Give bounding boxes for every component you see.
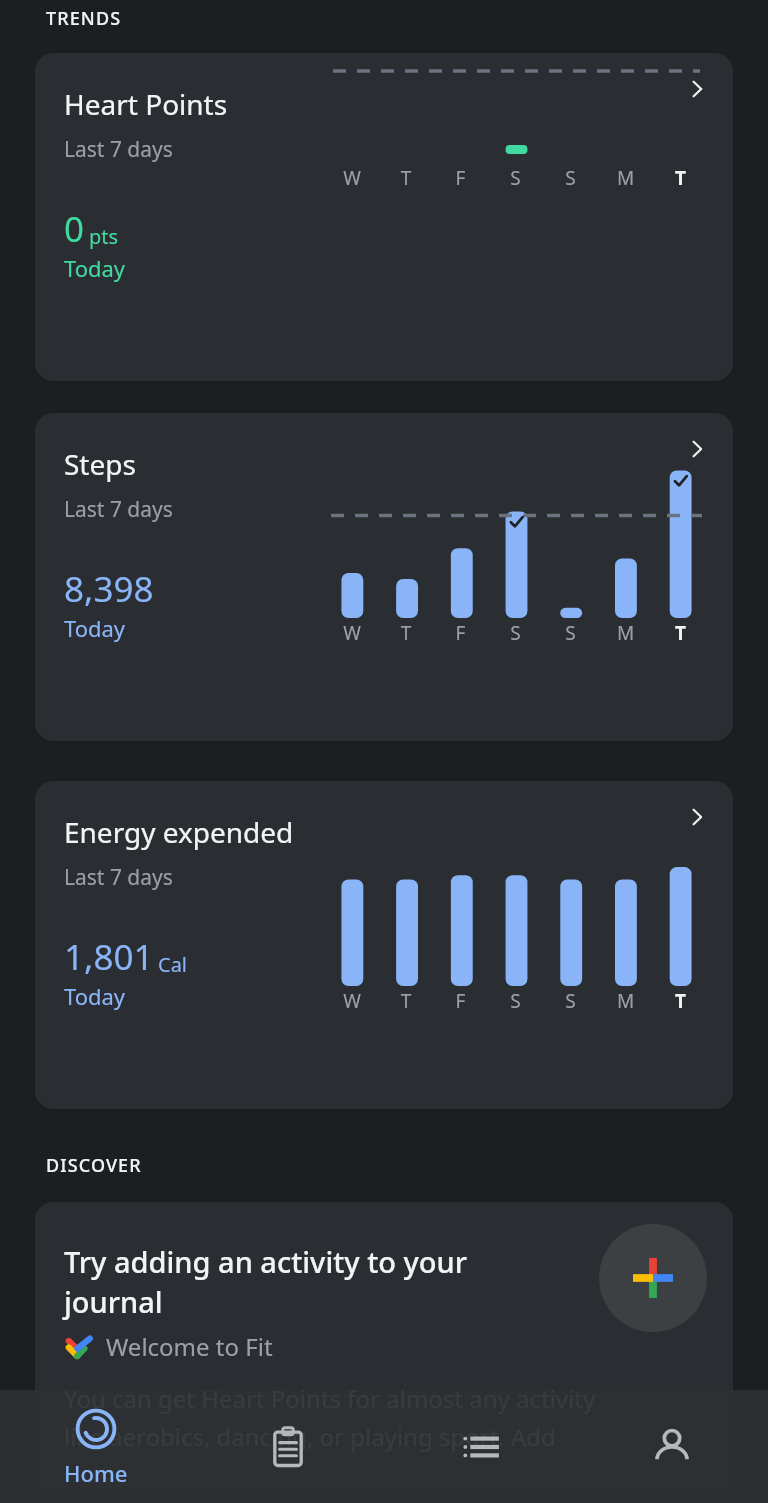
button[interactable]: Energy expended xyxy=(35,781,733,1109)
staticText: Cal xyxy=(158,951,188,978)
staticText: Try adding an activity to your journal xyxy=(64,1242,468,1322)
staticText: 8,398 xyxy=(64,565,154,613)
staticText: T xyxy=(653,165,708,191)
button[interactable]: Open details xyxy=(675,427,719,471)
staticText: T xyxy=(653,620,708,646)
staticText: F xyxy=(433,620,488,646)
staticText: Today xyxy=(64,981,126,1011)
staticText: M xyxy=(598,620,653,646)
staticText: pts xyxy=(89,223,119,250)
staticText: Last 7 days xyxy=(64,863,173,892)
staticText: Last 7 days xyxy=(64,495,173,524)
staticText: W xyxy=(325,165,379,191)
staticText: W xyxy=(325,620,379,646)
staticText: F xyxy=(433,165,488,191)
button[interactable]: Profile xyxy=(576,1390,768,1503)
staticText: Welcome to Fit xyxy=(106,1330,273,1363)
staticText: Steps xyxy=(64,445,136,483)
button[interactable]: Try adding an activity to your journal xyxy=(35,1202,733,1492)
staticText: S xyxy=(488,165,543,191)
staticText: T xyxy=(379,988,433,1014)
staticText: S xyxy=(543,165,598,191)
button[interactable]: Open details xyxy=(675,67,719,111)
staticText: T xyxy=(653,988,708,1014)
button[interactable]: Home xyxy=(0,1390,192,1503)
staticText: Home xyxy=(64,1458,128,1488)
staticText: Heart Points xyxy=(64,85,228,123)
button[interactable]: Open details xyxy=(675,795,719,839)
staticText: You can get Heart Points for almost any … xyxy=(64,1382,596,1453)
staticText: S xyxy=(543,620,598,646)
staticText: Energy expended xyxy=(64,813,294,851)
staticText: T xyxy=(379,620,433,646)
staticText: F xyxy=(433,988,488,1014)
staticText: Last 7 days xyxy=(64,135,173,164)
staticText: M xyxy=(598,988,653,1014)
staticText: S xyxy=(488,988,543,1014)
staticText: S xyxy=(543,988,598,1014)
staticText: 1,801 xyxy=(64,933,154,981)
button[interactable]: Browse xyxy=(384,1390,576,1503)
staticText: 0 xyxy=(64,205,85,253)
button[interactable]: Heart Points xyxy=(35,53,733,381)
staticText: Today xyxy=(64,253,126,283)
button[interactable]: Steps xyxy=(35,413,733,741)
staticText: TRENDS xyxy=(46,6,122,31)
button[interactable]: Journal xyxy=(192,1390,384,1503)
staticText: Today xyxy=(64,613,126,643)
staticText: W xyxy=(325,988,379,1014)
button[interactable]: Add activity xyxy=(599,1224,707,1332)
staticText: DISCOVER xyxy=(46,1153,142,1178)
staticText: M xyxy=(598,165,653,191)
staticText: S xyxy=(488,620,543,646)
staticText: T xyxy=(379,165,433,191)
